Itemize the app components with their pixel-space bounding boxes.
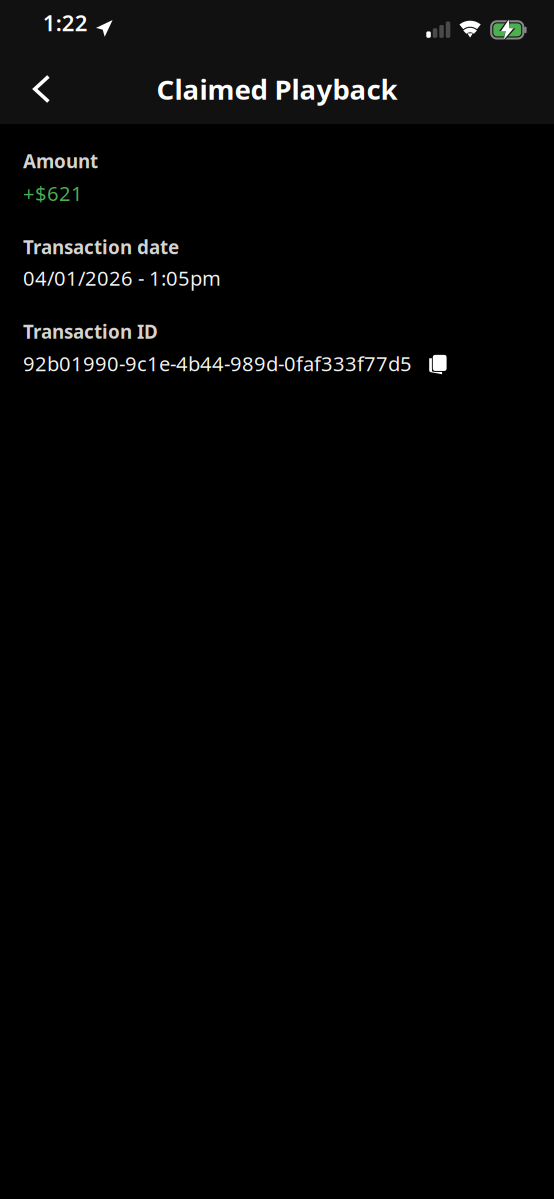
staticText: Transaction ID bbox=[23, 319, 158, 344]
staticText: 1:22 bbox=[43, 8, 88, 38]
staticText: 92b01990-9c1e-4b44-989d-0faf333f77d5 bbox=[23, 350, 412, 377]
staticText: +$621 bbox=[23, 179, 83, 207]
staticText: Amount bbox=[23, 148, 98, 174]
staticText: 04/01/2026 - 1:05pm bbox=[23, 264, 221, 291]
button[interactable]: Copy transaction ID bbox=[429, 350, 447, 374]
staticText: Claimed Playback bbox=[156, 70, 397, 108]
staticText: Transaction date bbox=[23, 234, 179, 260]
button[interactable]: Back bbox=[0, 65, 74, 113]
